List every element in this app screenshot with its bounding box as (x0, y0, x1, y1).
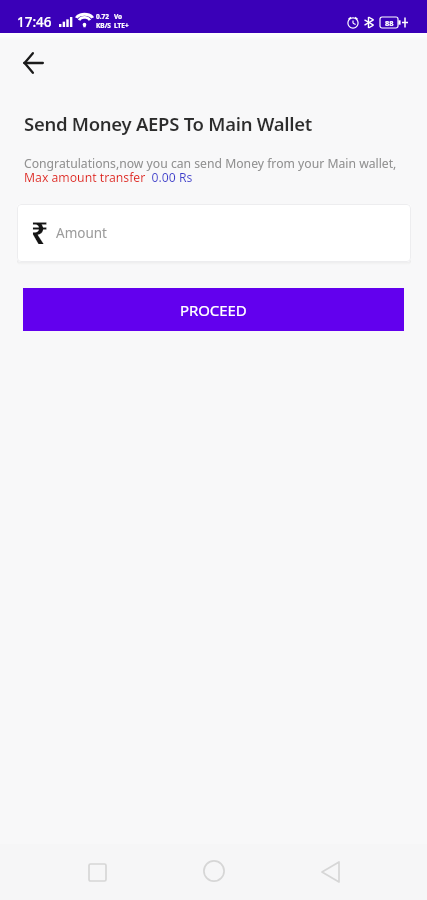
staticText: 0.72 (96, 12, 109, 21)
staticText: Send Money AEPS To Main Wallet (24, 111, 312, 136)
staticText: KB/S (96, 21, 111, 30)
button[interactable]: Home (190, 847, 238, 895)
staticText: 17:46 (17, 13, 52, 31)
staticText: Amount (56, 224, 107, 242)
button[interactable]: Recent apps (73, 848, 121, 896)
staticText: LTE+ (114, 21, 129, 30)
staticText: ₹ (31, 212, 49, 253)
button[interactable]: ₹ (17, 204, 411, 262)
staticText: PROCEED (180, 300, 247, 320)
button[interactable]: PROCEED (23, 288, 404, 331)
button[interactable]: Back (306, 848, 354, 896)
staticText: Vo (114, 12, 123, 21)
staticText: Max amount transfer 0.00 Rs (24, 169, 193, 186)
staticText: Congratulations,now you can send Money f… (24, 155, 397, 172)
button[interactable]: Back (9, 39, 57, 87)
staticText: 88 (385, 18, 394, 28)
